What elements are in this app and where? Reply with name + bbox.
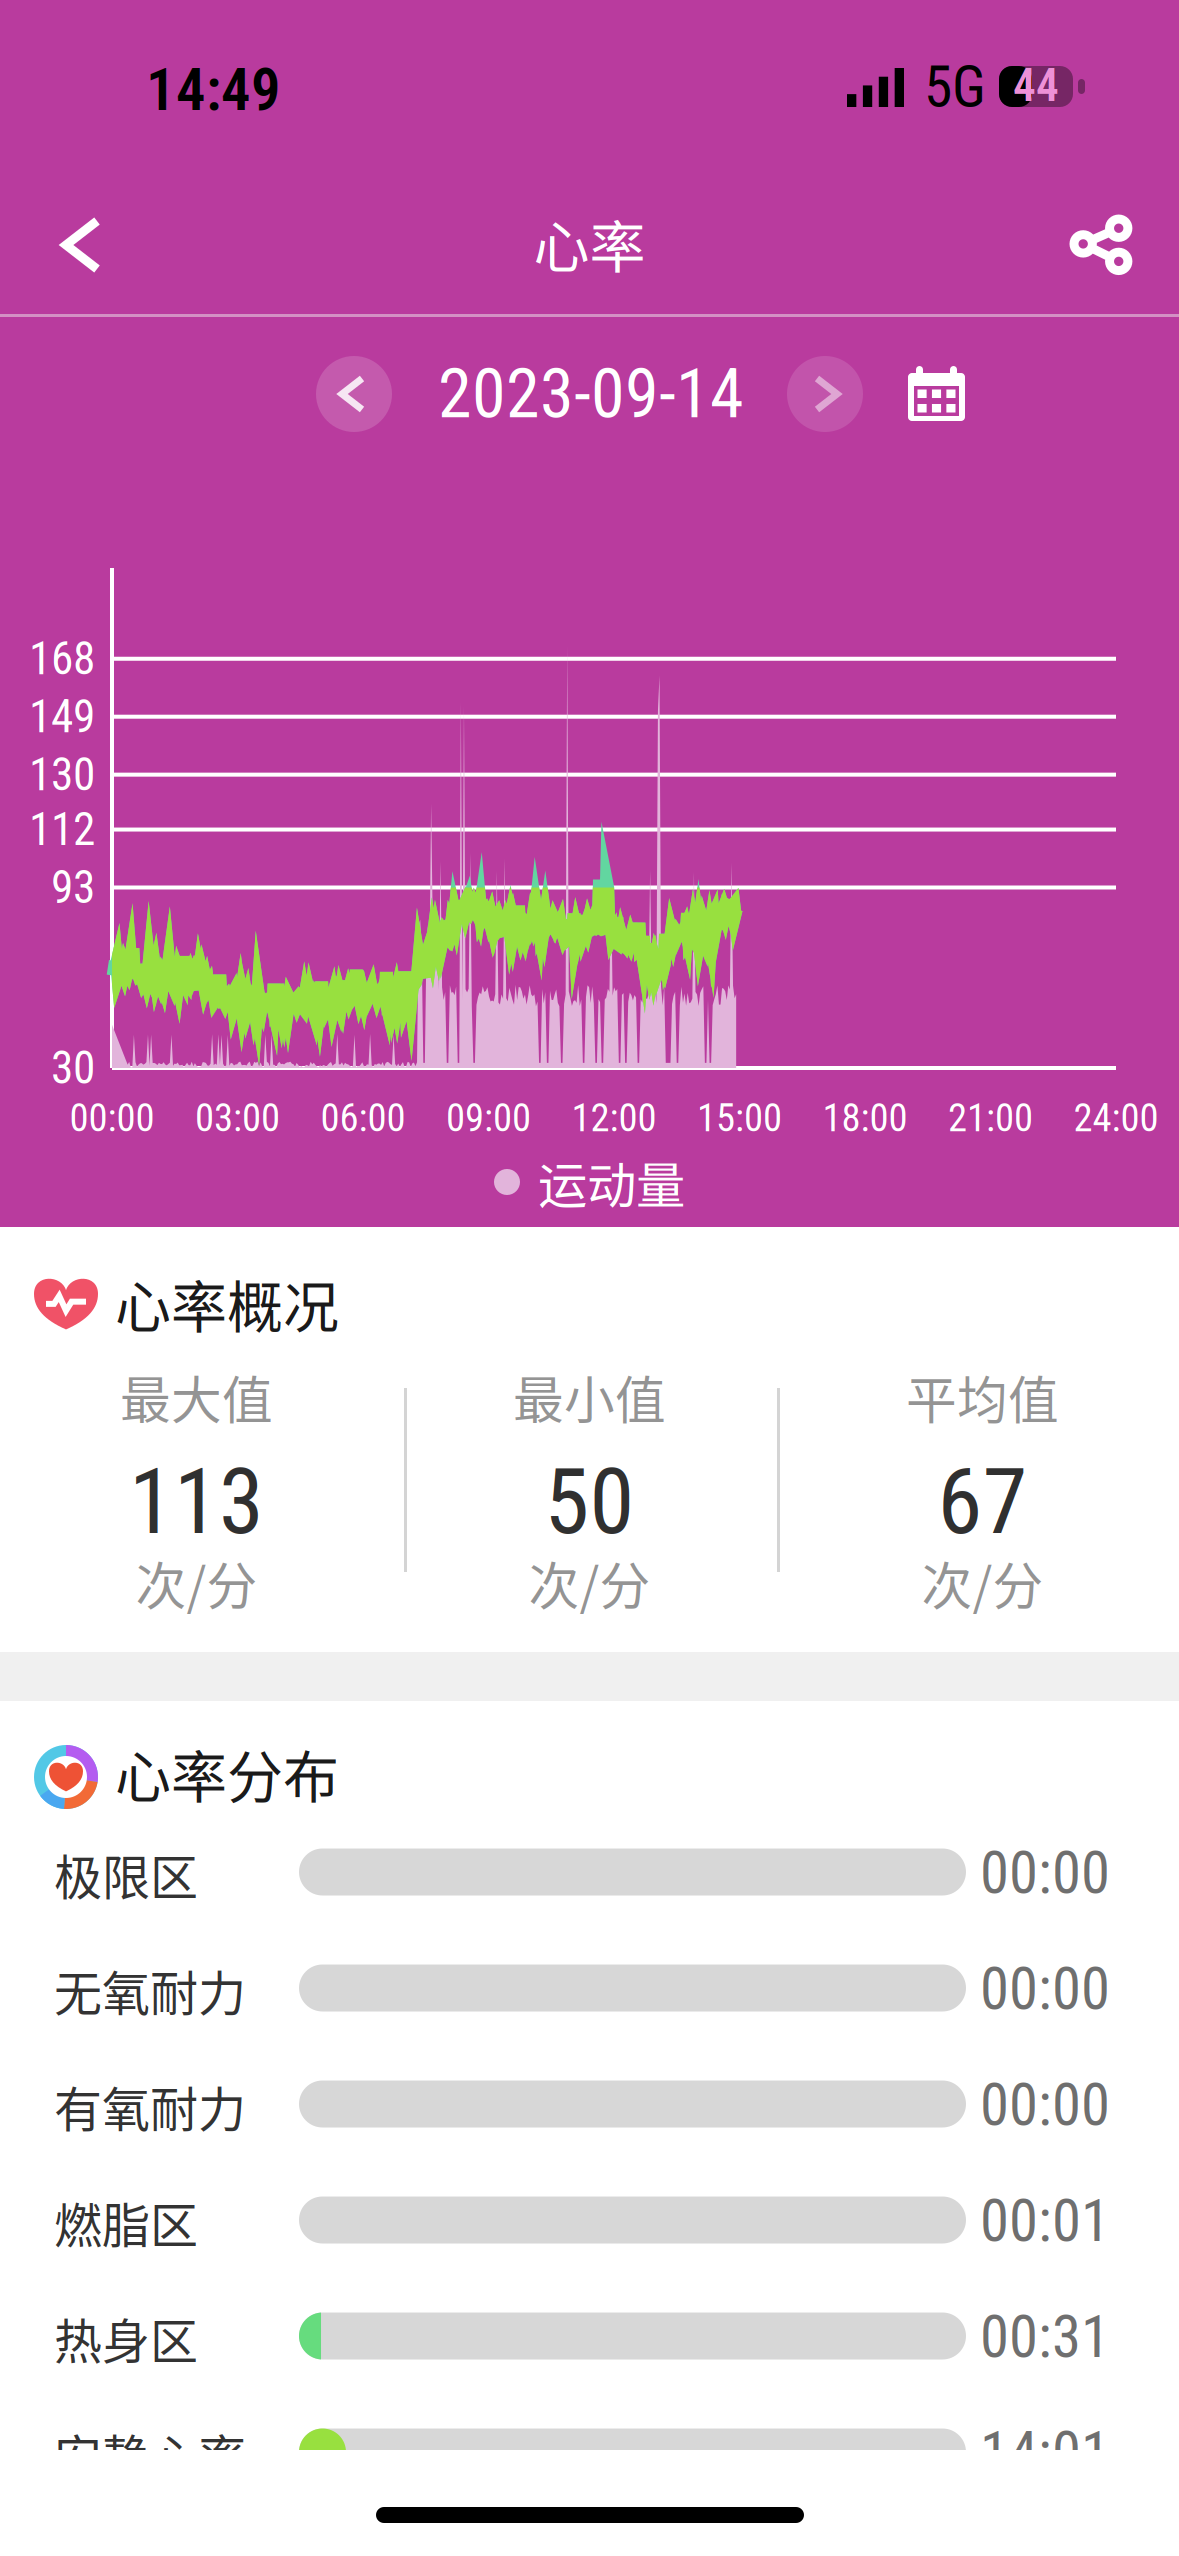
button[interactable]: Choose date xyxy=(884,342,989,445)
staticText: 93 xyxy=(51,861,95,914)
staticText: 14:49 xyxy=(146,56,281,124)
button[interactable]: 极限区 xyxy=(0,1814,1179,1930)
staticText: 112 xyxy=(29,803,95,856)
staticText: 00:01 xyxy=(980,2187,1110,2255)
staticText: 113 xyxy=(129,1449,264,1555)
staticText: 次/分 xyxy=(135,1546,257,1620)
staticText: 44 xyxy=(1013,59,1059,112)
staticText: 最小值 xyxy=(513,1360,666,1434)
staticText: 运动量 xyxy=(538,1146,685,1218)
button[interactable]: Back xyxy=(24,183,139,307)
button[interactable]: 有氧耐力 xyxy=(0,2046,1179,2162)
staticText: 00:00 xyxy=(980,1955,1110,2023)
staticText: 18:00 xyxy=(822,1095,907,1141)
staticText: 心率概况 xyxy=(115,1262,339,1344)
staticText: 168 xyxy=(29,632,95,685)
staticText: 最大值 xyxy=(120,1360,273,1434)
staticText: 21:00 xyxy=(948,1095,1033,1141)
staticText: 次/分 xyxy=(528,1546,650,1620)
staticText: 燃脂区 xyxy=(54,2187,198,2257)
staticText: 平均值 xyxy=(906,1360,1059,1434)
staticText: 有氧耐力 xyxy=(54,2071,246,2141)
staticText: 00:00 xyxy=(980,2071,1110,2139)
staticText: 03:00 xyxy=(195,1095,280,1141)
staticText: 5G xyxy=(924,53,986,121)
staticText: 15:00 xyxy=(697,1095,782,1141)
staticText: 极限区 xyxy=(54,1839,198,1909)
staticText: 50 xyxy=(544,1449,634,1555)
staticText: 次/分 xyxy=(921,1546,1043,1620)
staticText: 12:00 xyxy=(571,1095,656,1141)
button[interactable]: 无氧耐力 xyxy=(0,1930,1179,2046)
staticText: 09:00 xyxy=(446,1095,531,1141)
staticText: 149 xyxy=(29,690,95,743)
button[interactable]: Next day xyxy=(787,356,863,432)
button[interactable]: 燃脂区 xyxy=(0,2162,1179,2278)
staticText: 热身区 xyxy=(54,2303,198,2373)
staticText: 安静心率 xyxy=(54,2419,246,2489)
staticText: 06:00 xyxy=(320,1095,405,1141)
button[interactable]: 安静心率 xyxy=(0,2394,1179,2510)
staticText: 00:31 xyxy=(980,2303,1110,2371)
staticText: 心率分布 xyxy=(115,1732,339,1814)
staticText: 00:00 xyxy=(980,1839,1110,1907)
button[interactable]: 热身区 xyxy=(0,2278,1179,2394)
staticText: 无氧耐力 xyxy=(54,1955,246,2025)
staticText: 14:01 xyxy=(980,2419,1110,2487)
staticText: 2023-09-14 xyxy=(438,354,744,434)
staticText: 24:00 xyxy=(1073,1095,1158,1141)
staticText: 130 xyxy=(29,748,95,801)
button[interactable]: Share xyxy=(1040,183,1163,306)
staticText: 30 xyxy=(51,1041,95,1094)
staticText: 67 xyxy=(937,1449,1027,1555)
button[interactable]: Previous day xyxy=(316,356,392,432)
staticText: 心率 xyxy=(533,202,645,284)
staticText: 00:00 xyxy=(69,1095,154,1141)
